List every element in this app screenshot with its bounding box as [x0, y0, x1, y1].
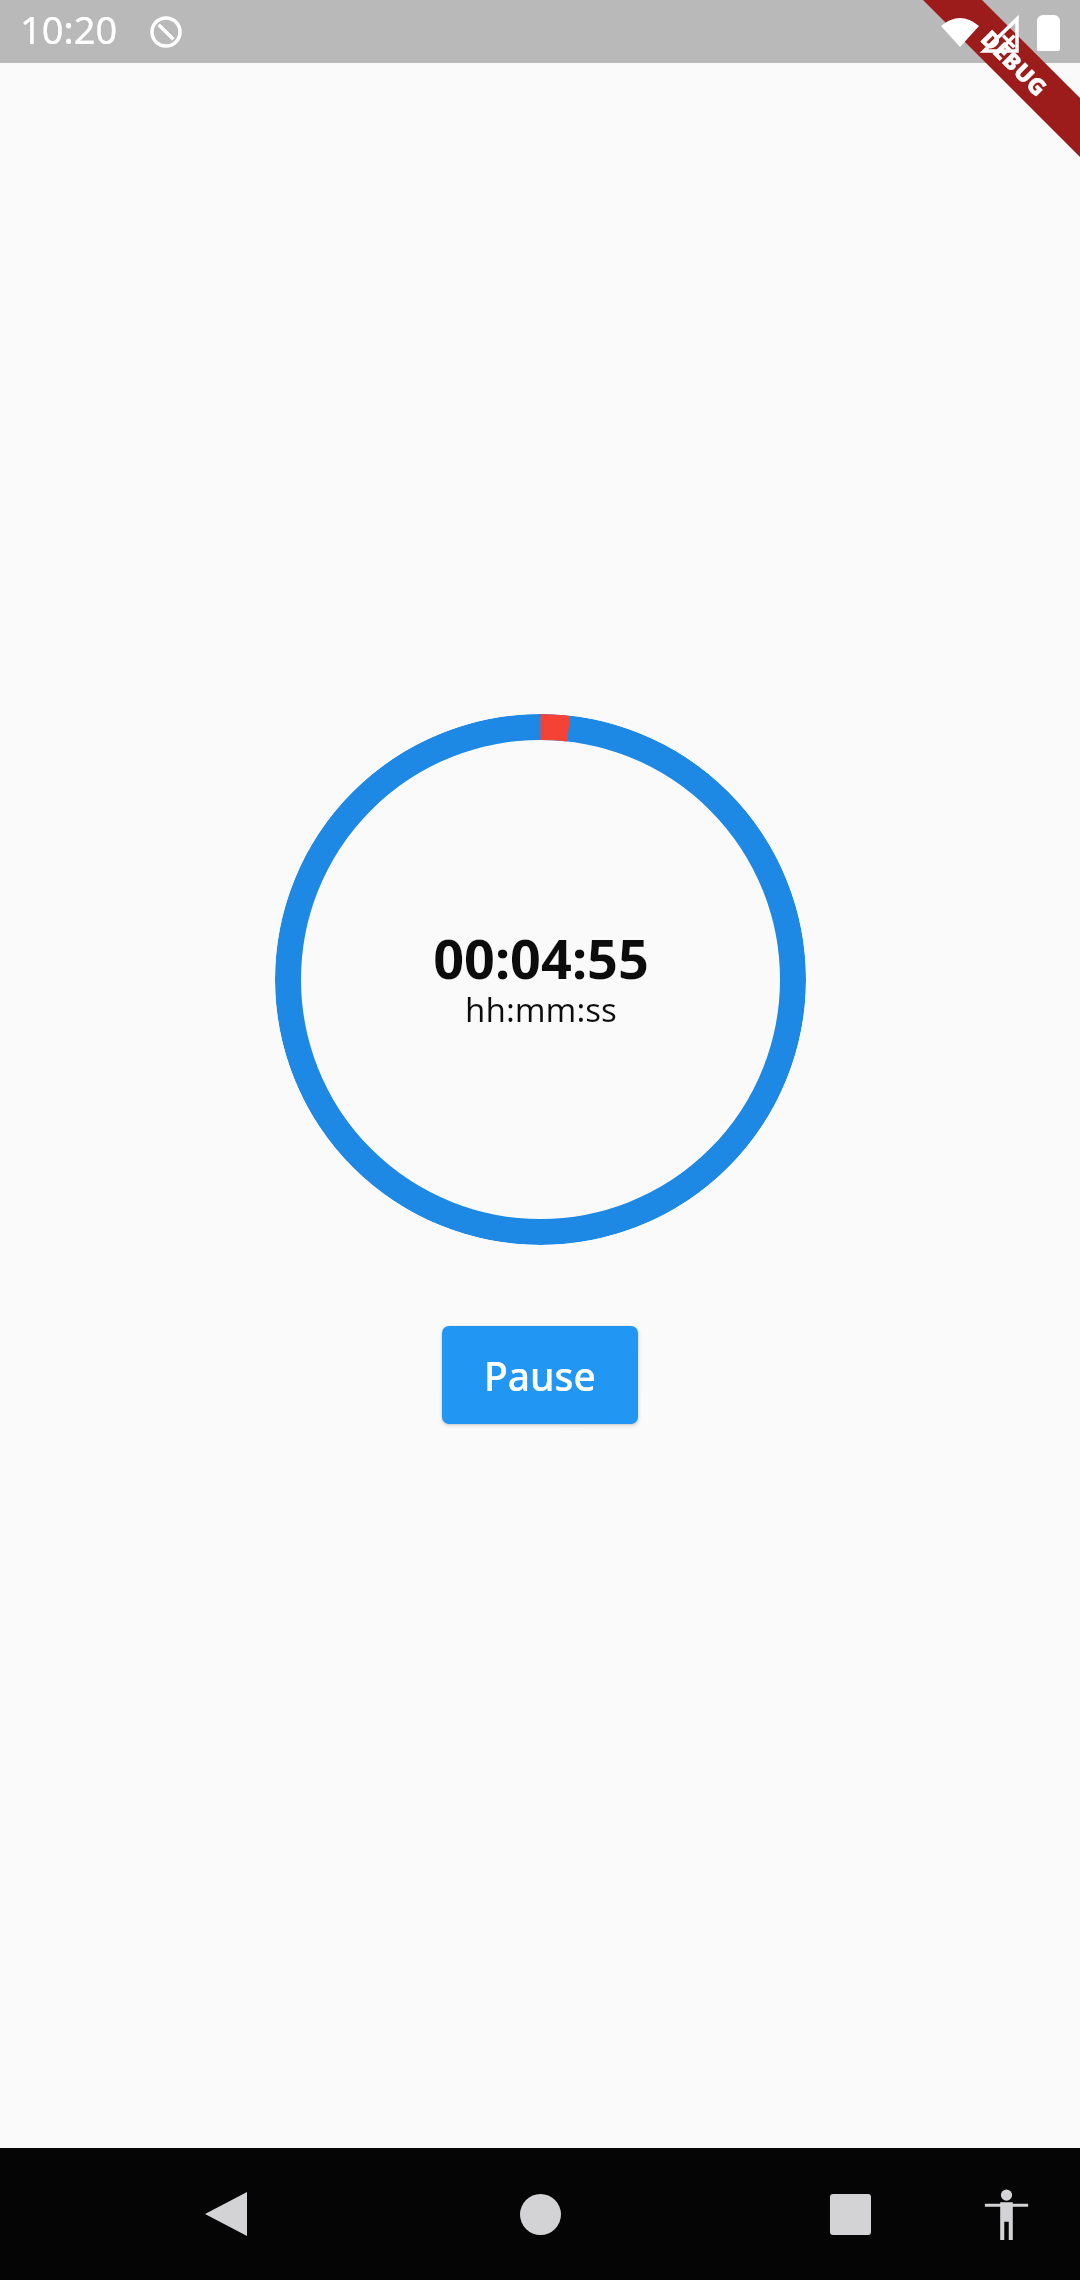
staticText: Pause [484, 1349, 596, 1402]
staticText: 10:20 [20, 3, 118, 55]
button[interactable]: Pause [442, 1326, 638, 1424]
button[interactable]: Recent apps [806, 2170, 894, 2258]
staticText: hh:mm:ss [465, 987, 617, 1032]
button[interactable]: Back [182, 2170, 270, 2258]
button[interactable]: Countdown timer 00:04:55 [275, 714, 806, 1245]
button[interactable]: Home [496, 2170, 584, 2258]
button[interactable]: Accessibility [962, 2170, 1050, 2258]
staticText: 00:04:55 [433, 921, 649, 995]
